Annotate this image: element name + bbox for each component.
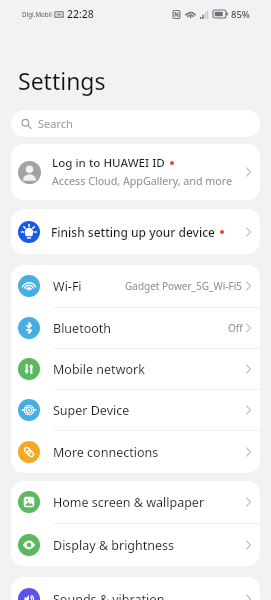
staticText: Wi-Fi (53, 278, 82, 295)
staticText: Display & brightness (53, 537, 175, 554)
button[interactable]: Mobile network (11, 349, 260, 389)
button[interactable]: Home screen & wallpaper (11, 481, 260, 523)
staticText: Home screen & wallpaper (53, 494, 205, 511)
staticText: 22:28 (67, 7, 94, 21)
staticText: Sounds & vibration (53, 591, 165, 600)
staticText: Search (38, 116, 73, 131)
staticText: Settings (18, 65, 106, 96)
button[interactable]: Finish setting up your device (11, 209, 260, 254)
staticText: Access Cloud, AppGallery, and more (52, 174, 232, 189)
button[interactable]: Sounds & vibration (11, 577, 260, 600)
button[interactable]: Super Device (11, 390, 260, 430)
button[interactable]: Display & brightness (11, 524, 260, 566)
staticText: Bluetooth (53, 320, 112, 337)
staticText: Gadget Power_5G_Wi-Fi5 (125, 279, 243, 293)
button[interactable]: Search (11, 110, 260, 137)
staticText: Log in to HUAWEI ID (52, 155, 165, 171)
staticText: Off (228, 321, 243, 335)
staticText: Digi.Mobil (22, 10, 53, 18)
staticText: More connections (53, 444, 159, 461)
staticText: Super Device (53, 402, 130, 419)
button[interactable]: Bluetooth (11, 308, 260, 348)
staticText: Mobile network (53, 361, 145, 378)
button[interactable]: Wi-Fi (11, 265, 260, 307)
staticText: Finish setting up your device (51, 224, 215, 240)
staticText: 85% (231, 8, 250, 21)
button[interactable]: Log in to HUAWEI ID (11, 144, 260, 200)
button[interactable]: More connections (11, 431, 260, 473)
